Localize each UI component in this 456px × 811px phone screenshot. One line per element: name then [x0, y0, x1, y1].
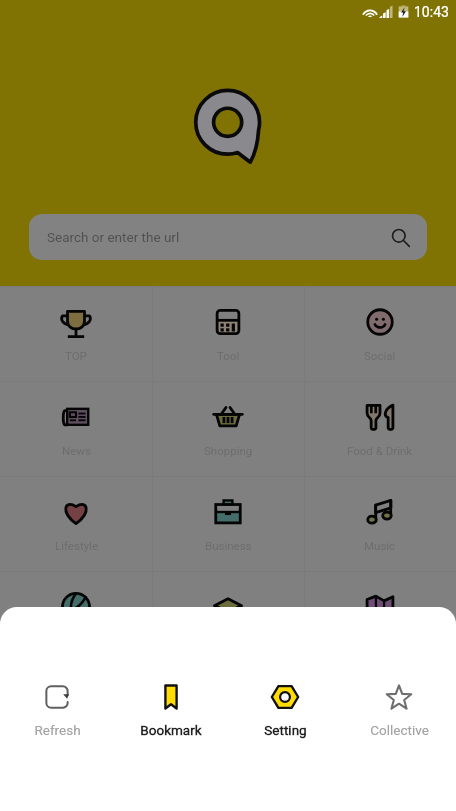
button[interactable]: Tool	[152, 286, 304, 381]
staticText: Business	[205, 539, 252, 552]
button[interactable]: Education	[152, 571, 304, 666]
button[interactable]: Collective	[342, 683, 456, 738]
button[interactable]: Music	[304, 476, 456, 571]
staticText: Setting	[264, 722, 307, 738]
staticText: Shopping	[204, 444, 253, 457]
staticText: Social	[364, 349, 396, 362]
button[interactable]: Food & Drink	[304, 381, 456, 476]
staticText: Bookmark	[140, 722, 202, 738]
button[interactable]: Refresh	[0, 683, 114, 738]
staticText: Lifestyle	[55, 539, 98, 552]
button[interactable]: Business	[152, 476, 304, 571]
button[interactable]: Travel	[304, 571, 456, 666]
button[interactable]: Lifestyle	[0, 476, 152, 571]
button[interactable]: Bookmark	[114, 683, 228, 738]
button[interactable]: TOP	[0, 286, 152, 381]
staticText: Search or enter the url	[47, 229, 180, 245]
staticText: News	[62, 444, 91, 457]
button[interactable]: News	[0, 381, 152, 476]
button[interactable]: Social	[304, 286, 456, 381]
staticText: Refresh	[34, 722, 81, 738]
staticText: TOP	[65, 349, 87, 362]
staticText: Collective	[370, 722, 429, 738]
staticText: Tool	[217, 349, 240, 362]
button[interactable]: Shopping	[152, 381, 304, 476]
button[interactable]: Search or enter the url	[29, 214, 427, 260]
button[interactable]: Sports	[0, 571, 152, 666]
staticText: Music	[364, 539, 396, 552]
button[interactable]: Setting	[228, 683, 342, 738]
staticText: 10:43	[414, 4, 449, 20]
staticText: Food & Drink	[347, 444, 413, 457]
